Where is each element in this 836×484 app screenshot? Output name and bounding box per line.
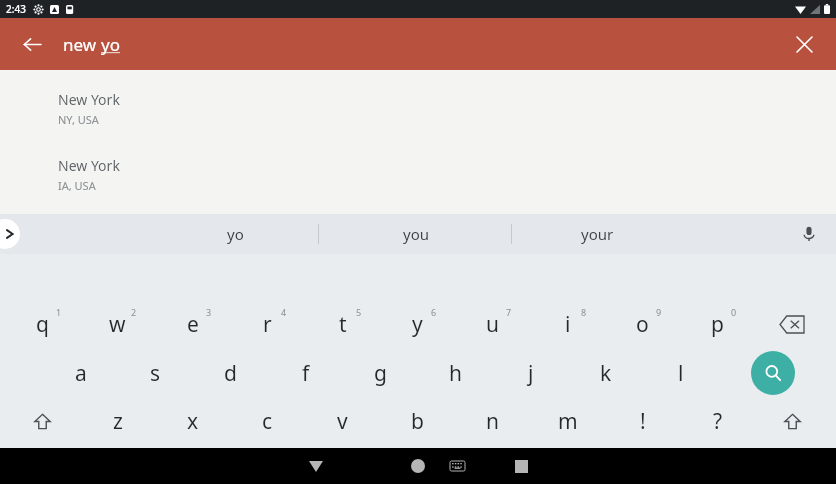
staticText: y xyxy=(412,310,423,339)
button[interactable]: y xyxy=(380,299,455,349)
staticText: t xyxy=(339,310,347,339)
button[interactable]: . xyxy=(687,445,747,484)
staticText: j xyxy=(528,359,534,388)
button[interactable]: d xyxy=(193,349,268,397)
button[interactable]: ? xyxy=(680,397,755,445)
staticText: yo xyxy=(227,224,244,244)
staticText: l xyxy=(678,359,684,388)
button[interactable]: Backspace xyxy=(761,299,823,349)
staticText: New York xyxy=(58,211,120,230)
button[interactable]: a xyxy=(43,349,118,397)
staticText: you xyxy=(403,224,429,244)
staticText: 4 xyxy=(281,306,287,318)
button[interactable]: Hide keyboard xyxy=(298,448,334,484)
staticText: e xyxy=(187,310,199,339)
button[interactable]: Search xyxy=(751,351,795,395)
button[interactable]: r xyxy=(230,299,305,349)
button[interactable]: j xyxy=(493,349,568,397)
staticText: h xyxy=(449,359,462,388)
staticText: c xyxy=(262,407,273,436)
button[interactable]: , xyxy=(87,445,147,484)
button[interactable]: ?123 xyxy=(756,445,828,484)
staticText: ! xyxy=(640,407,646,436)
staticText: ? xyxy=(713,407,723,436)
button[interactable]: f xyxy=(268,349,343,397)
staticText: NY, USA xyxy=(58,112,99,127)
button[interactable]: Shift xyxy=(7,397,77,445)
staticText: your xyxy=(581,224,614,244)
staticText: b xyxy=(411,407,424,436)
staticText: u xyxy=(486,310,499,339)
button[interactable]: i xyxy=(530,299,605,349)
button[interactable]: New York xyxy=(0,70,836,137)
staticText: 9 xyxy=(656,306,662,318)
button[interactable]: g xyxy=(343,349,418,397)
button[interactable]: New York xyxy=(0,203,836,230)
staticText: d xyxy=(224,359,237,388)
staticText: s xyxy=(150,359,161,388)
button[interactable]: s xyxy=(118,349,193,397)
button[interactable]: yo xyxy=(175,214,295,254)
button[interactable]: m xyxy=(530,397,605,445)
button[interactable]: l xyxy=(643,349,718,397)
staticText: 3 xyxy=(206,306,212,318)
staticText: p xyxy=(711,310,724,339)
button[interactable]: your xyxy=(537,214,657,254)
staticText: o xyxy=(636,310,649,339)
staticText: 1 xyxy=(56,306,62,318)
button[interactable]: you xyxy=(356,214,476,254)
button[interactable]: n xyxy=(455,397,530,445)
button[interactable]: Clear xyxy=(784,24,824,64)
staticText: v xyxy=(337,407,348,436)
button[interactable]: z xyxy=(80,397,155,445)
staticText: yo xyxy=(101,33,120,56)
staticText: New York xyxy=(58,156,120,175)
button[interactable]: Back xyxy=(12,24,52,64)
button[interactable]: Voice input xyxy=(794,219,824,249)
button[interactable]: Emoji xyxy=(612,445,672,484)
button[interactable]: Expand suggestions xyxy=(0,219,20,249)
button[interactable]: e xyxy=(155,299,230,349)
staticText: 8 xyxy=(581,306,587,318)
staticText: w xyxy=(109,310,126,339)
button[interactable]: Shift xyxy=(757,397,827,445)
button[interactable]: h xyxy=(418,349,493,397)
button[interactable]: u xyxy=(455,299,530,349)
button[interactable]: ! xyxy=(605,397,680,445)
button[interactable]: p xyxy=(680,299,755,349)
button[interactable]: x xyxy=(155,397,230,445)
button[interactable]: b xyxy=(380,397,455,445)
button[interactable]: t xyxy=(305,299,380,349)
staticText: a xyxy=(75,359,87,388)
button[interactable]: o xyxy=(605,299,680,349)
staticText: 5 xyxy=(356,306,362,318)
staticText: 2 xyxy=(131,306,137,318)
button[interactable]: Space xyxy=(165,456,597,478)
staticText: n xyxy=(486,407,499,436)
button[interactable]: v xyxy=(305,397,380,445)
staticText: i xyxy=(565,310,571,339)
button[interactable]: w xyxy=(80,299,155,349)
button[interactable]: q xyxy=(5,299,80,349)
button[interactable]: Switch keyboard xyxy=(441,450,473,482)
staticText: g xyxy=(374,359,387,388)
staticText: new xyxy=(63,33,101,56)
button[interactable]: ?123 xyxy=(6,445,78,484)
button[interactable]: New York xyxy=(0,137,836,203)
button[interactable]: k xyxy=(568,349,643,397)
staticText: r xyxy=(263,310,272,339)
button[interactable]: Home xyxy=(400,448,436,484)
staticText: f xyxy=(302,359,310,388)
staticText: q xyxy=(36,310,49,339)
staticText: 7 xyxy=(506,306,512,318)
button[interactable]: Recents xyxy=(503,448,539,484)
button[interactable]: c xyxy=(230,397,305,445)
staticText: IA, USA xyxy=(58,178,96,193)
staticText: m xyxy=(558,407,578,436)
staticText: k xyxy=(600,359,612,388)
staticText: 2:43 xyxy=(6,2,26,16)
staticText: x xyxy=(187,407,199,436)
